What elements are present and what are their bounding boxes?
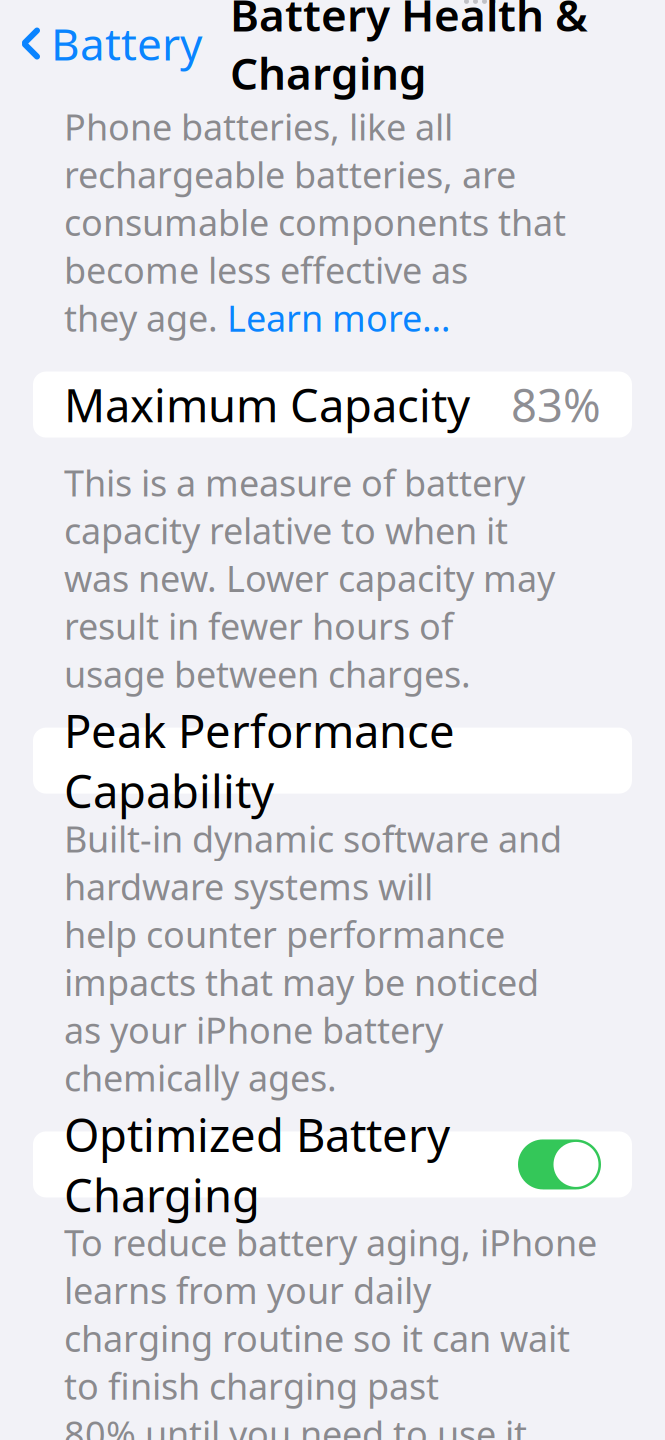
staticText: Optimized Battery Charging [64, 1104, 450, 1225]
staticText: help counter performance impacts that ma… [64, 910, 539, 1006]
staticText: Battery [51, 14, 202, 73]
button[interactable]: Peak Performance Capability [33, 728, 632, 794]
staticText: 83% [511, 374, 601, 435]
button[interactable]: Maximum Capacity [33, 372, 632, 438]
staticText: Battery Health & Charging [230, 0, 588, 102]
staticText: Learn more… [227, 294, 450, 342]
button[interactable]: Optimized Battery Charging [33, 1131, 632, 1197]
staticText: Built-in dynamic software and hardware s… [64, 815, 562, 910]
staticText: as your iPhone battery chemically ages. [64, 1006, 443, 1101]
staticText: usage between charges. [64, 650, 471, 698]
button[interactable]: Battery [0, 2, 214, 85]
staticText: charging routine so it can wait to finis… [64, 1314, 570, 1410]
staticText: This is a measure of battery capacity re… [64, 459, 525, 554]
staticText: 80% until you need to use it. [64, 1410, 537, 1440]
button[interactable]: Learn more… [227, 294, 450, 342]
staticText: Phone batteries, like all rechargeable b… [64, 102, 516, 198]
staticText: they age. [64, 294, 227, 342]
staticText: was new. Lower capacity may result in fe… [64, 554, 555, 650]
staticText: To reduce battery aging, iPhone learns f… [64, 1218, 597, 1314]
staticText: Peak Performance Capability [64, 700, 455, 821]
staticText: Maximum Capacity [64, 374, 470, 435]
staticText: consumable components that become less e… [64, 198, 566, 294]
